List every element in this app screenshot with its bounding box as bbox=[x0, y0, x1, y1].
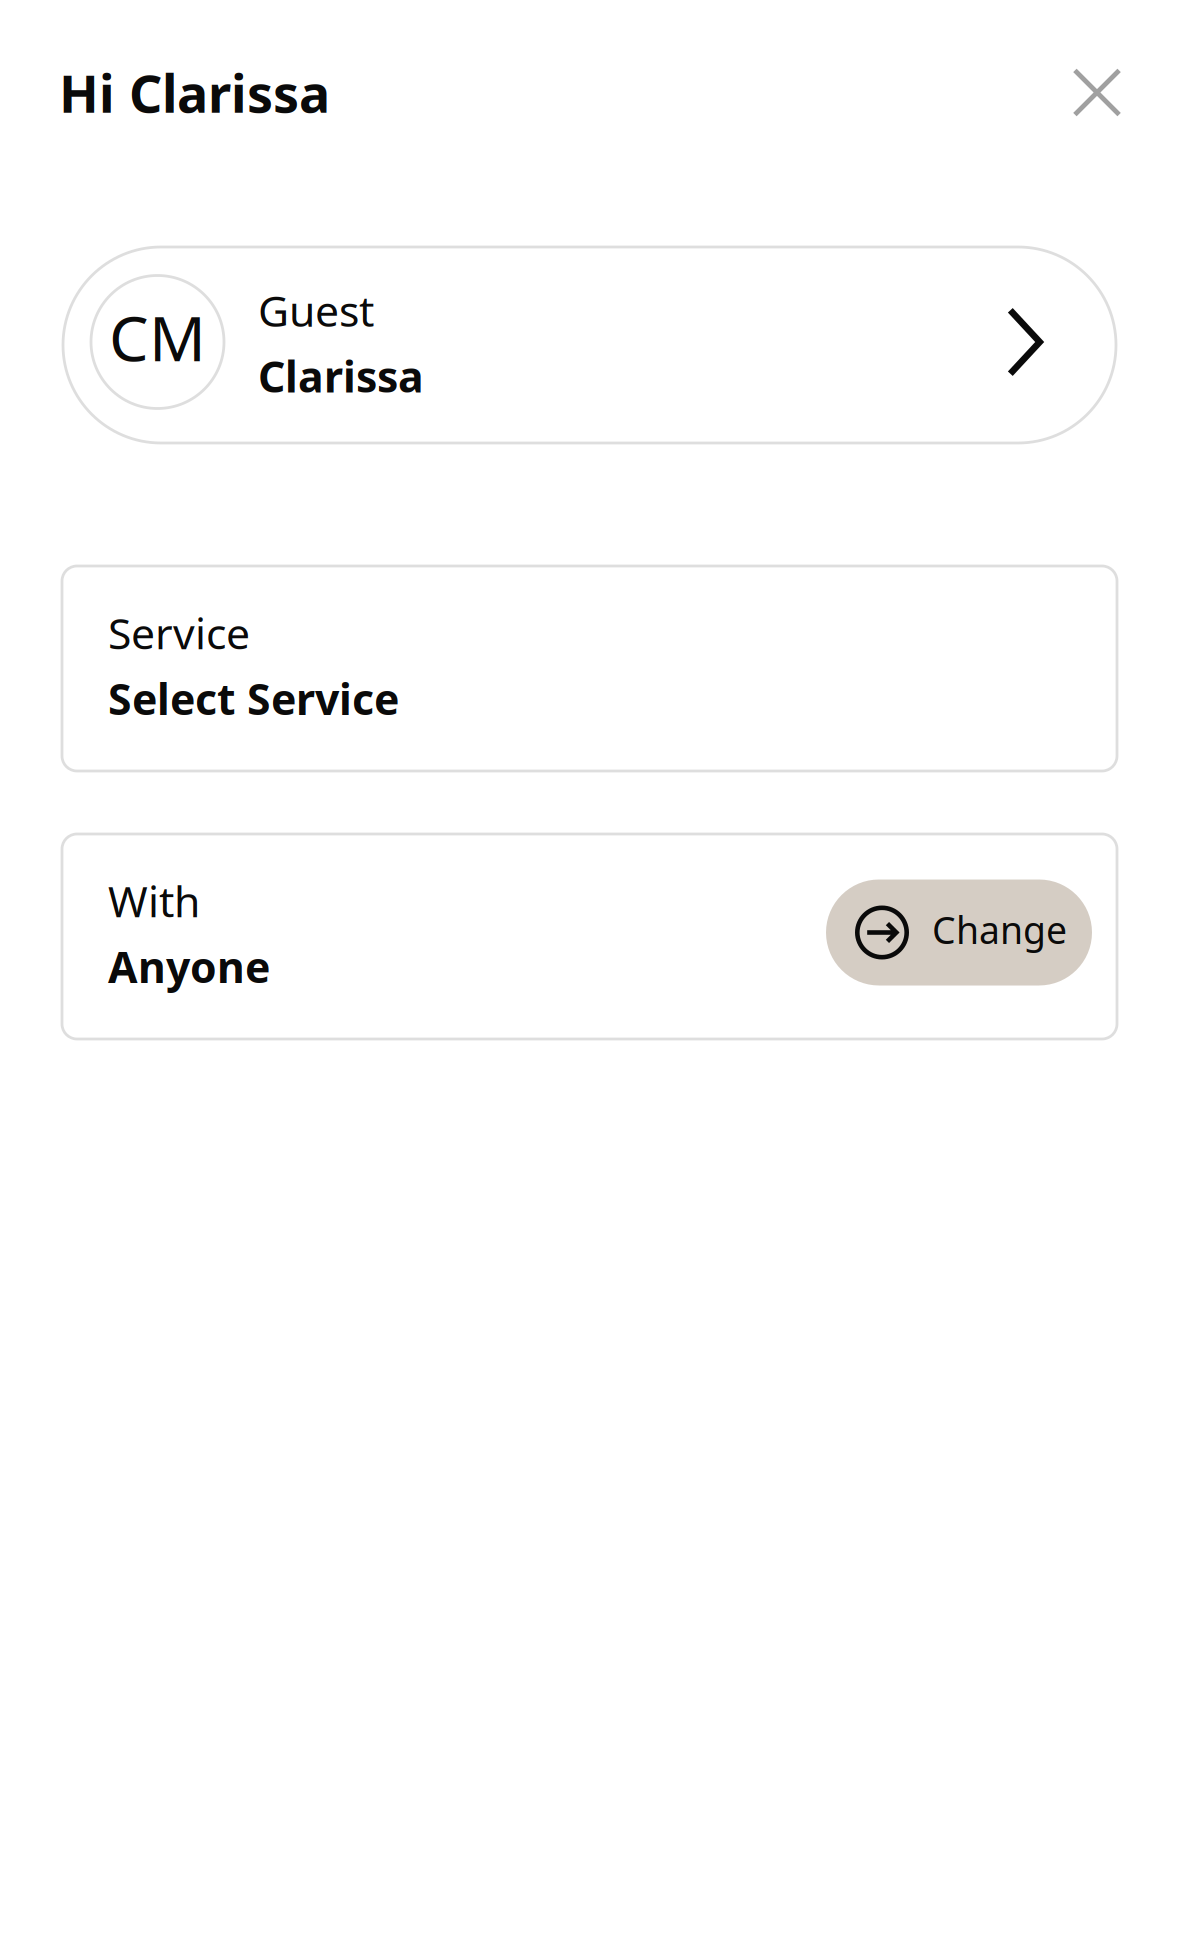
staticText: CM bbox=[109, 295, 206, 379]
button[interactable]: Change bbox=[826, 879, 1092, 985]
staticText: Hi Clarissa bbox=[59, 58, 330, 127]
staticText: Clarissa bbox=[258, 347, 424, 404]
staticText: Anyone bbox=[108, 938, 270, 995]
staticText: Service bbox=[108, 604, 250, 661]
staticText: With bbox=[108, 872, 200, 929]
staticText: Change bbox=[932, 905, 1067, 954]
staticText: Select Service bbox=[108, 670, 399, 727]
button[interactable]: Close bbox=[1067, 62, 1127, 122]
button[interactable]: CM bbox=[63, 247, 1116, 443]
staticText: Guest bbox=[258, 282, 374, 338]
